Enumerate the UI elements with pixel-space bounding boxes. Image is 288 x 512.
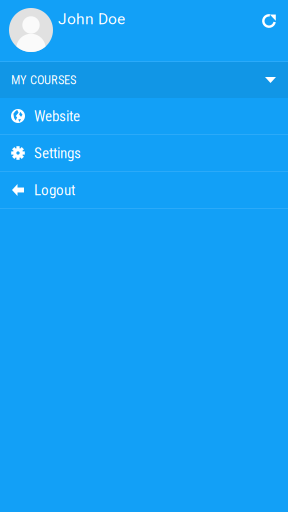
button[interactable]: Settings (0, 135, 288, 172)
staticText: Logout (34, 181, 75, 199)
staticText: John Doe (58, 10, 125, 28)
staticText: Settings (34, 144, 81, 162)
button[interactable]: Logout (0, 172, 288, 209)
button[interactable]: Refresh (255, 7, 283, 35)
button[interactable]: MY COURSES (0, 62, 288, 98)
button[interactable]: Website (0, 98, 288, 135)
staticText: MY COURSES (11, 73, 76, 87)
staticText: Website (34, 107, 80, 125)
